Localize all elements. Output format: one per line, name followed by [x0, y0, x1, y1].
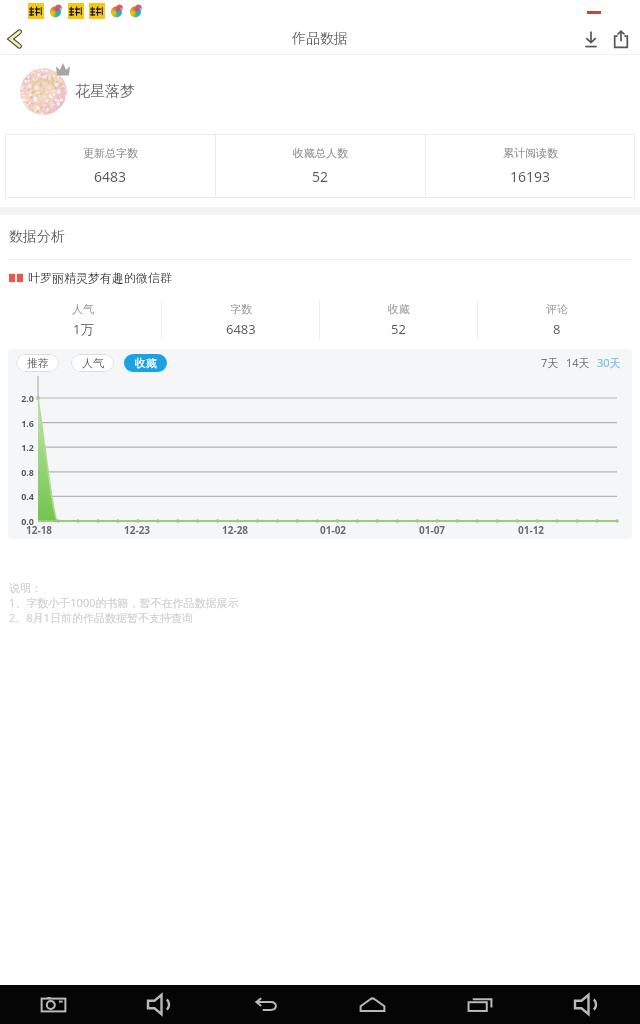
button[interactable]: 更新总字数 [5, 134, 215, 198]
staticText: 累计阅读数 [503, 146, 558, 160]
staticText: 52 [312, 167, 329, 186]
staticText: 评论 [546, 302, 568, 316]
staticText: 字数 [230, 302, 252, 316]
staticText: 7天 [541, 355, 559, 370]
staticText: 01-07 [419, 523, 446, 537]
button[interactable]: Back [0, 22, 30, 55]
staticText: 叶罗丽精灵梦有趣的微信群 [28, 270, 172, 285]
button[interactable]: Recents [426, 985, 533, 1024]
button[interactable]: 人气 [71, 354, 114, 372]
staticText: 0.8 [21, 466, 34, 478]
staticText: 1.2 [21, 441, 34, 453]
staticText: 1万 [73, 320, 94, 338]
staticText: 作品数据 [292, 30, 348, 48]
staticText: 人气 [82, 356, 104, 370]
button[interactable]: 14天 [565, 352, 591, 373]
staticText: 12-23 [124, 523, 151, 537]
button[interactable]: 叶罗丽精灵梦有趣的微信群 [9, 260, 640, 294]
staticText: 收藏 [388, 302, 410, 316]
staticText: 6483 [226, 320, 256, 338]
button[interactable]: 花星落梦 [20, 55, 640, 128]
staticText: 1、字数小于1000的书籍，暂不在作品数据展示 [9, 595, 239, 610]
staticText: 6483 [94, 167, 127, 186]
staticText: 16193 [510, 167, 551, 186]
button[interactable]: 人气 [5, 294, 161, 346]
staticText: 推荐 [27, 356, 49, 370]
staticText: 8 [553, 320, 561, 338]
button[interactable]: 收藏 [320, 294, 477, 346]
button[interactable]: Home [319, 985, 426, 1024]
staticText: 收藏 [135, 356, 157, 370]
staticText: 14天 [566, 355, 590, 370]
button[interactable]: 评论 [478, 294, 635, 346]
staticText: 01-12 [518, 523, 545, 537]
staticText: 30天 [597, 355, 621, 370]
staticText: 1.6 [21, 417, 34, 429]
button[interactable]: 收藏 [124, 354, 167, 372]
button[interactable]: 7天 [540, 352, 560, 373]
button[interactable]: 推荐 [16, 354, 59, 372]
staticText: 数据分析 [9, 228, 65, 246]
button[interactable]: Share [606, 24, 636, 54]
staticText: 12-18 [26, 523, 53, 537]
staticText: 52 [391, 320, 406, 338]
staticText: 更新总字数 [83, 146, 138, 160]
button[interactable]: Download [576, 24, 606, 54]
staticText: 2.0 [21, 392, 34, 404]
staticText: 0.4 [21, 490, 34, 502]
button[interactable]: Volume up [533, 985, 640, 1024]
button[interactable]: 30天 [596, 352, 622, 373]
staticText: 2、8月1日前的作品数据暂不支持查询 [9, 610, 193, 625]
button[interactable]: 累计阅读数 [426, 134, 635, 198]
button[interactable]: Screenshot [0, 985, 106, 1024]
button[interactable]: Volume down [106, 985, 212, 1024]
button[interactable]: 字数 [162, 294, 319, 346]
staticText: 12-28 [222, 523, 249, 537]
staticText: 收藏总人数 [293, 146, 348, 160]
staticText: 花星落梦 [75, 82, 135, 101]
staticText: 0.0 [21, 515, 34, 527]
staticText: 01-02 [320, 523, 347, 537]
button[interactable]: Back [212, 985, 319, 1024]
staticText: 人气 [72, 302, 94, 316]
staticText: 说明： [9, 581, 42, 595]
button[interactable]: 收藏总人数 [216, 134, 425, 198]
